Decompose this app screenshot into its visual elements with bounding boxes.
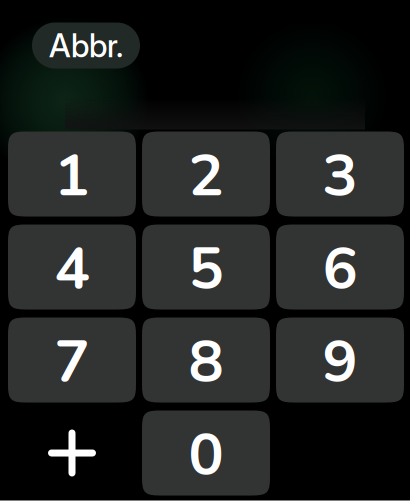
- button[interactable]: Abbr.: [32, 22, 140, 68]
- button[interactable]: 2: [142, 131, 270, 216]
- staticText: 2: [188, 136, 223, 216]
- button[interactable]: 7: [8, 317, 136, 402]
- button[interactable]: 0: [142, 410, 270, 495]
- staticText: 0: [188, 415, 223, 495]
- button[interactable]: 6: [276, 224, 404, 309]
- button[interactable]: 8: [142, 317, 270, 402]
- button[interactable]: 4: [8, 224, 136, 309]
- button[interactable]: 5: [142, 224, 270, 309]
- button[interactable]: 3: [276, 131, 404, 216]
- staticText: 4: [54, 229, 89, 309]
- staticText: 1: [54, 136, 89, 216]
- staticText: 9: [322, 322, 357, 402]
- button[interactable]: 1: [8, 131, 136, 216]
- staticText: 8: [188, 322, 223, 402]
- staticText: 6: [322, 229, 357, 309]
- staticText: 7: [54, 322, 89, 402]
- staticText: Abbr.: [49, 26, 123, 65]
- button[interactable]: Add: [8, 410, 136, 495]
- button[interactable]: 9: [276, 317, 404, 402]
- staticText: 5: [188, 229, 223, 309]
- staticText: 3: [322, 136, 357, 216]
